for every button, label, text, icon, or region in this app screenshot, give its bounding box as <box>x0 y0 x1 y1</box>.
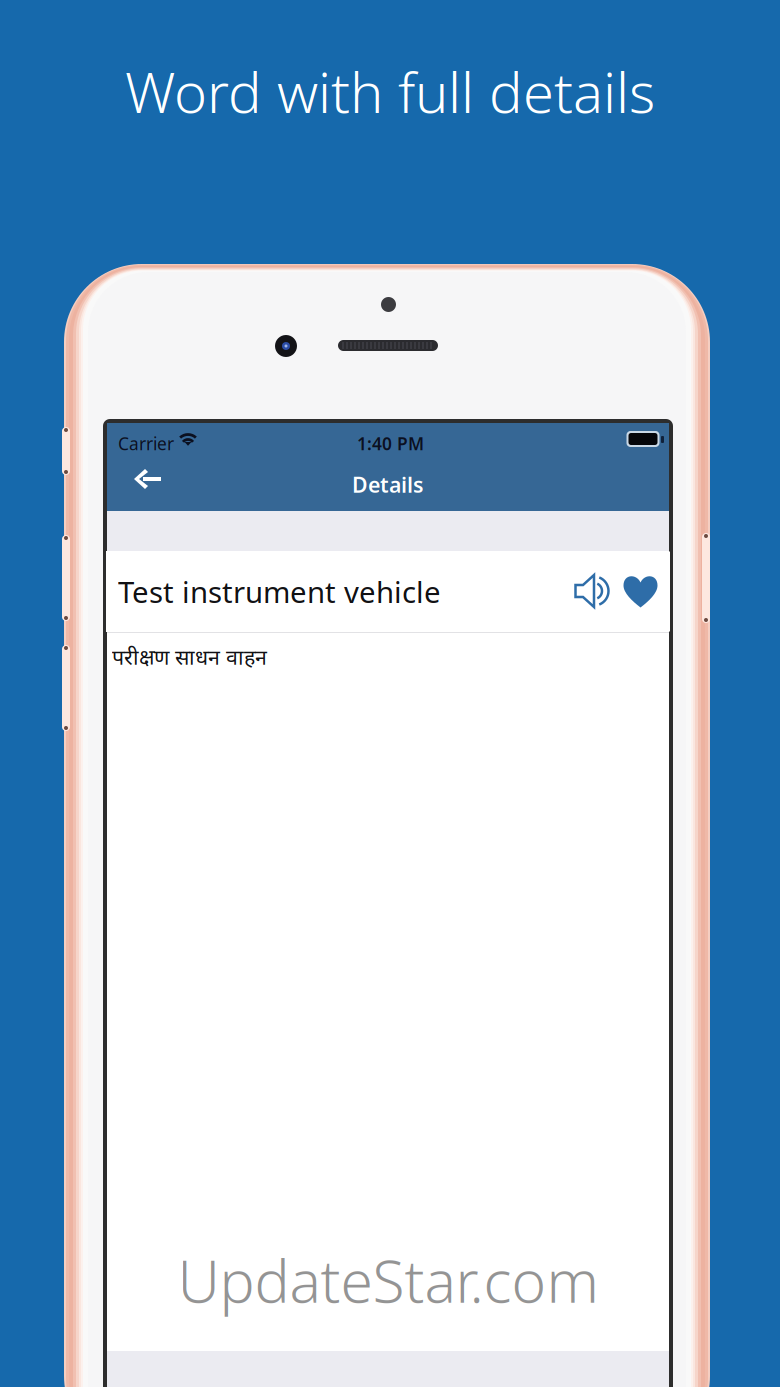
staticText: UpdateStar.com <box>177 1241 598 1319</box>
button[interactable]: Test instrument vehicle <box>106 551 568 632</box>
button[interactable]: Pronounce <box>568 551 617 631</box>
staticText: Details <box>352 470 424 499</box>
button[interactable]: Back <box>107 458 182 503</box>
staticText: Test instrument vehicle <box>118 572 441 611</box>
staticText: परीक्षण साधन वाहन <box>112 642 267 671</box>
staticText: 1:40 PM <box>357 432 424 455</box>
button[interactable]: Add to favourites <box>617 551 670 631</box>
staticText: Carrier <box>118 432 174 455</box>
staticText: Word with full details <box>125 54 655 128</box>
